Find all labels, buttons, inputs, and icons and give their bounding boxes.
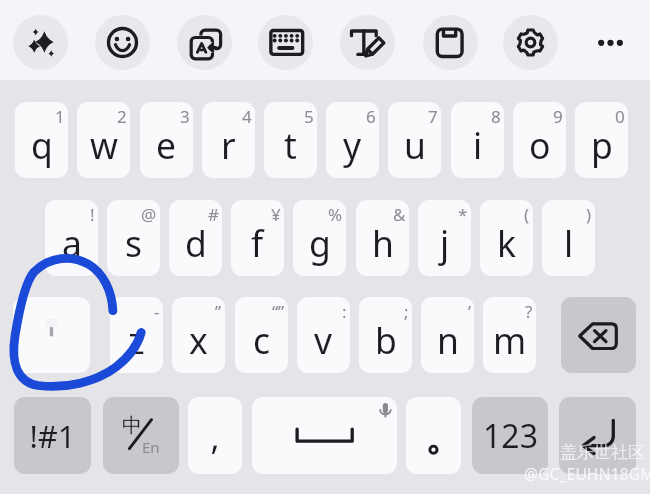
- staticText: 6: [366, 105, 376, 128]
- button[interactable]: v: [297, 297, 350, 373]
- staticText: i: [473, 121, 483, 169]
- button[interactable]: n: [421, 297, 474, 373]
- button[interactable]: i: [451, 102, 504, 178]
- button[interactable]: Enter: [559, 397, 636, 474]
- button[interactable]: Comma: [188, 397, 242, 474]
- staticText: 5: [304, 105, 314, 128]
- staticText: f: [251, 219, 264, 267]
- staticText: w: [90, 121, 118, 169]
- button[interactable]: r: [202, 102, 255, 178]
- staticText: a: [62, 219, 82, 267]
- staticText: ;: [404, 300, 409, 323]
- staticText: ”: [215, 300, 222, 323]
- button[interactable]: f: [231, 200, 284, 276]
- staticText: &: [393, 203, 406, 226]
- button[interactable]: Keyboard layout: [258, 15, 313, 70]
- button[interactable]: Symbols: [14, 397, 91, 474]
- staticText: ?: [525, 300, 533, 323]
- button[interactable]: b: [359, 297, 412, 373]
- staticText: 4: [242, 105, 252, 128]
- staticText: c: [253, 316, 271, 364]
- staticText: l: [564, 219, 574, 267]
- staticText: 123: [483, 414, 538, 458]
- staticText: z: [128, 316, 145, 364]
- staticText: 2: [117, 105, 127, 128]
- button[interactable]: u: [388, 102, 441, 178]
- staticText: @: [141, 203, 157, 226]
- staticText: 9: [553, 105, 563, 128]
- button[interactable]: k: [480, 200, 533, 276]
- staticText: t: [284, 121, 297, 169]
- button[interactable]: o: [513, 102, 566, 178]
- staticText: ): [586, 203, 592, 226]
- button[interactable]: p: [575, 102, 628, 178]
- staticText: y: [343, 121, 362, 169]
- staticText: *: [458, 203, 468, 226]
- button[interactable]: Translate: [177, 15, 232, 70]
- staticText: @GC_EUHN18GM: [524, 463, 650, 484]
- staticText: 7: [428, 105, 438, 128]
- button[interactable]: j: [418, 200, 471, 276]
- button[interactable]: e: [140, 102, 193, 178]
- button[interactable]: c: [235, 297, 288, 373]
- staticText: u: [404, 121, 426, 169]
- button[interactable]: a: [45, 200, 98, 276]
- staticText: b: [375, 316, 397, 364]
- staticText: j: [440, 219, 450, 267]
- staticText: q: [31, 121, 53, 169]
- button[interactable]: l: [542, 200, 595, 276]
- button[interactable]: w: [77, 102, 130, 178]
- button[interactable]: Switch language: [103, 397, 179, 474]
- staticText: #: [208, 203, 219, 226]
- staticText: !#1: [29, 415, 76, 457]
- button[interactable]: Settings: [503, 15, 558, 70]
- button[interactable]: Space: [252, 397, 397, 474]
- button[interactable]: y: [326, 102, 379, 178]
- button[interactable]: Shift: [13, 297, 90, 373]
- staticText: ¥: [271, 203, 281, 226]
- button[interactable]: s: [107, 200, 160, 276]
- staticText: s: [125, 219, 143, 267]
- staticText: !: [90, 203, 95, 226]
- staticText: ,: [210, 414, 220, 460]
- staticText: n: [437, 316, 459, 364]
- button[interactable]: x: [172, 297, 225, 373]
- staticText: k: [497, 219, 516, 267]
- staticText: 8: [491, 105, 501, 128]
- button[interactable]: q: [15, 102, 68, 178]
- staticText: x: [189, 316, 208, 364]
- button[interactable]: h: [356, 200, 409, 276]
- staticText: r: [221, 121, 236, 169]
- button[interactable]: d: [169, 200, 222, 276]
- button[interactable]: Period: [406, 397, 461, 474]
- staticText: h: [372, 219, 394, 267]
- staticText: En: [142, 437, 160, 457]
- staticText: 1: [55, 105, 65, 128]
- staticText: 盖乐世社区: [560, 442, 645, 463]
- button[interactable]: Handwriting: [340, 15, 395, 70]
- button[interactable]: m: [483, 297, 536, 373]
- staticText: (: [524, 203, 530, 226]
- staticText: 中: [122, 413, 142, 438]
- button[interactable]: Numbers: [472, 397, 548, 474]
- button[interactable]: t: [264, 102, 317, 178]
- staticText: ’: [468, 300, 471, 323]
- staticText: :: [342, 300, 347, 323]
- button[interactable]: z: [110, 297, 163, 373]
- button[interactable]: Emoji: [95, 15, 150, 70]
- staticText: o: [529, 121, 551, 169]
- staticText: 3: [180, 105, 190, 128]
- button[interactable]: More options: [583, 15, 638, 70]
- staticText: -: [154, 300, 160, 323]
- button[interactable]: Clipboard: [423, 15, 478, 70]
- staticText: v: [314, 316, 333, 364]
- staticText: e: [156, 121, 177, 169]
- staticText: 0: [615, 105, 625, 128]
- staticText: m: [493, 316, 527, 364]
- staticText: “”: [272, 300, 285, 323]
- button[interactable]: Backspace: [561, 297, 636, 373]
- button[interactable]: AI suggestions: [13, 15, 68, 70]
- button[interactable]: g: [293, 200, 346, 276]
- staticText: %: [328, 203, 343, 226]
- staticText: d: [185, 219, 207, 267]
